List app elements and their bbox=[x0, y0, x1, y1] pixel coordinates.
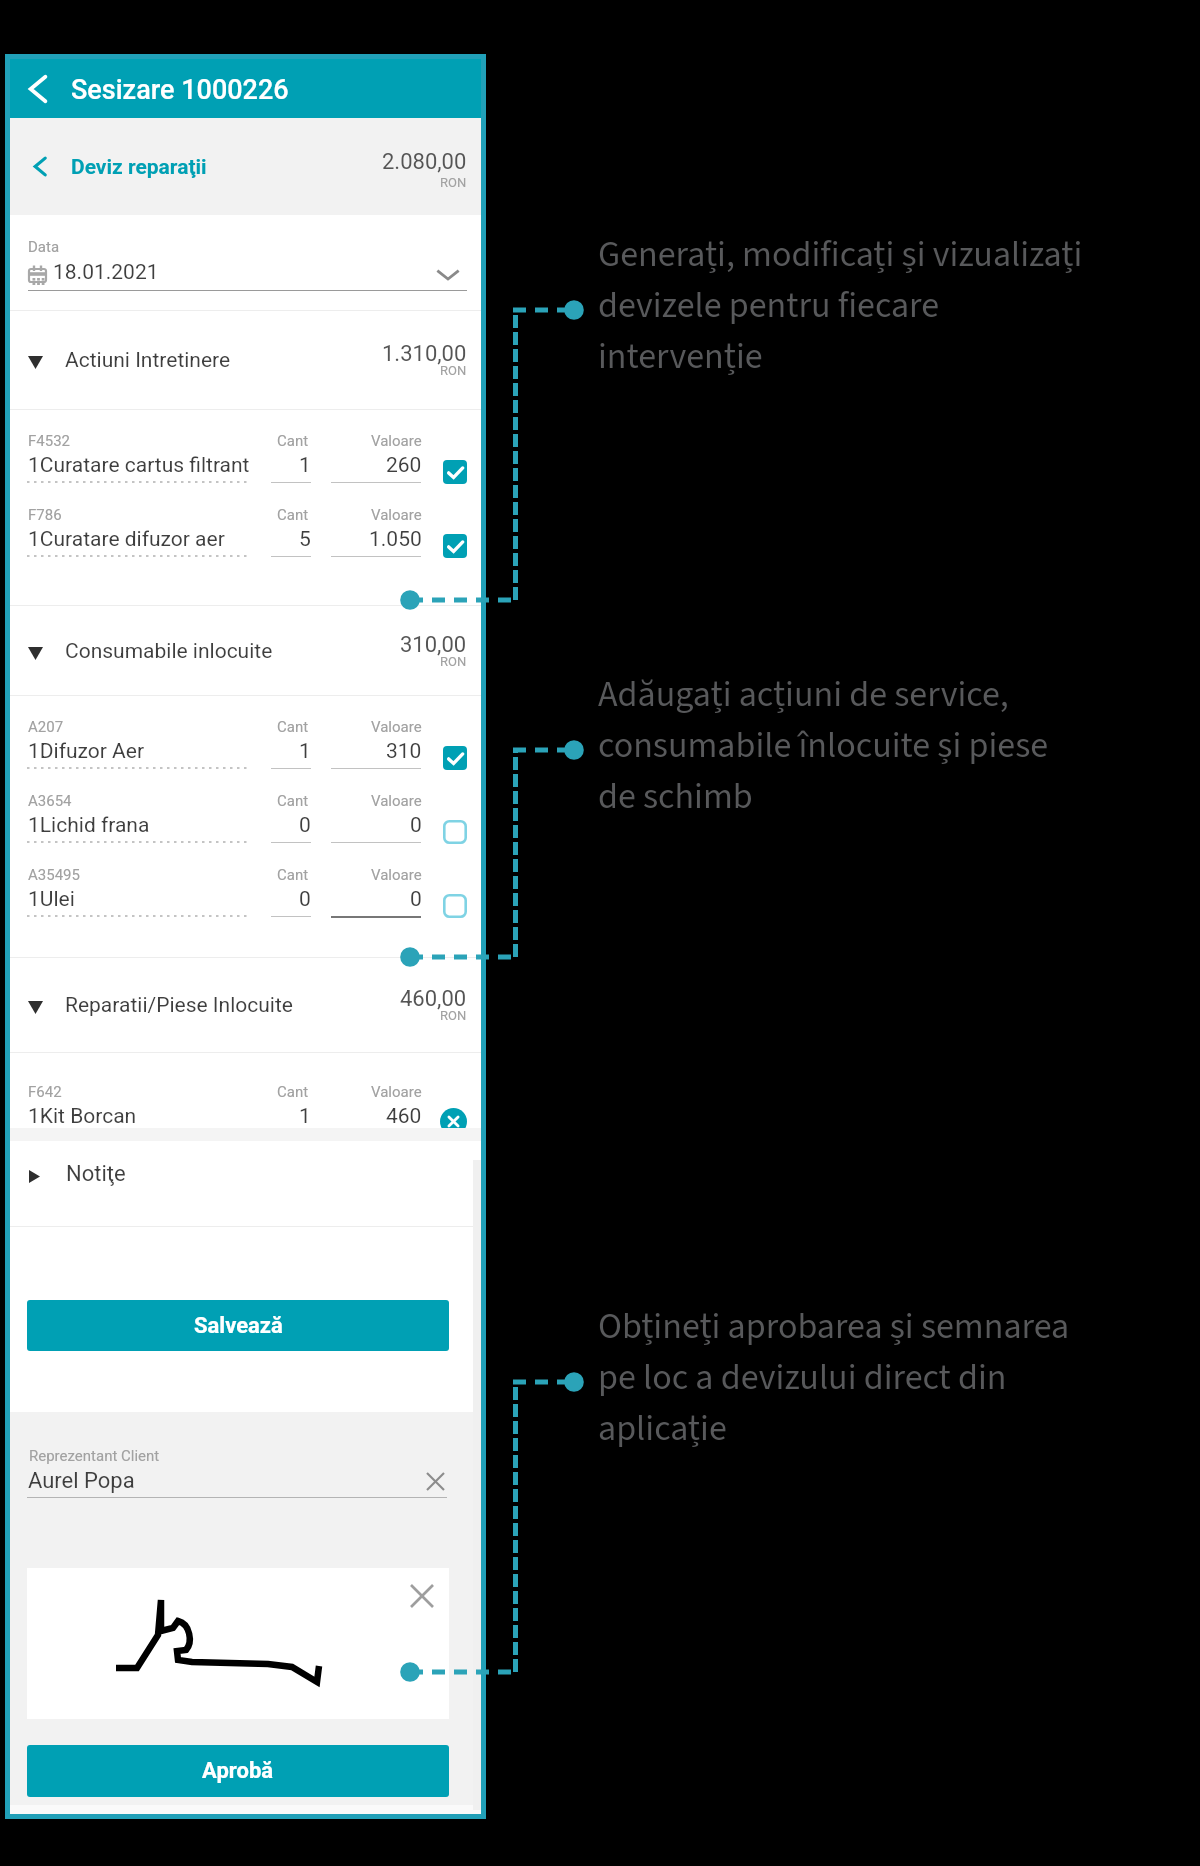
button[interactable]: Toggle item bbox=[443, 534, 467, 558]
staticText: 1Curatare difuzor aer bbox=[28, 527, 225, 552]
staticText: Cant bbox=[277, 506, 309, 524]
staticText: 1Curatare cartus filtrant bbox=[28, 453, 250, 478]
button[interactable]: Consumabile inlocuite bbox=[10, 606, 481, 695]
button[interactable]: Expand date bbox=[434, 260, 462, 288]
staticText: Aurel Popa bbox=[28, 1468, 135, 1494]
staticText: 0 bbox=[410, 887, 422, 912]
staticText: 260 bbox=[386, 453, 422, 478]
button[interactable]: Toggle item bbox=[443, 746, 467, 770]
staticText: 310,00 bbox=[400, 632, 467, 658]
button[interactable]: A3654 bbox=[10, 770, 481, 844]
staticText: Valoare bbox=[371, 792, 422, 810]
button[interactable]: Back bbox=[10, 59, 481, 118]
button[interactable]: Toggle item bbox=[443, 820, 467, 844]
staticText: Deviz reparaţii bbox=[71, 155, 207, 180]
staticText: RON bbox=[440, 175, 467, 190]
button[interactable]: Toggle item bbox=[443, 894, 467, 918]
staticText: RON bbox=[440, 1008, 467, 1023]
staticText: 0 bbox=[299, 887, 311, 912]
staticText: Valoare bbox=[371, 432, 422, 450]
button[interactable]: F786 bbox=[10, 484, 481, 558]
staticText: 460 bbox=[386, 1104, 422, 1129]
button[interactable]: Toggle item bbox=[440, 1108, 467, 1135]
staticText: 2.080,00 bbox=[382, 149, 467, 175]
button[interactable]: Actiuni Intretinere bbox=[10, 311, 481, 409]
staticText: Reprezentant Client bbox=[29, 1447, 160, 1465]
button[interactable]: A207 bbox=[10, 696, 481, 770]
staticText: RON bbox=[440, 363, 467, 378]
staticText: Obțineți aprobarea și semnarea pe loc a … bbox=[598, 1301, 1088, 1454]
staticText: 460,00 bbox=[400, 986, 467, 1012]
staticText: Consumabile inlocuite bbox=[65, 639, 273, 664]
button[interactable]: Clear name bbox=[421, 1467, 449, 1495]
staticText: 1Kit Borcan bbox=[28, 1104, 137, 1129]
staticText: F4532 bbox=[28, 432, 71, 450]
button[interactable]: Toggle item bbox=[443, 460, 467, 484]
staticText: 18.01.2021 bbox=[53, 260, 159, 285]
staticText: 1.050 bbox=[369, 527, 422, 552]
staticText: Cant bbox=[277, 718, 309, 736]
staticText: Valoare bbox=[371, 506, 422, 524]
staticText: 1Difuzor Aer bbox=[28, 739, 145, 764]
staticText: Valoare bbox=[371, 1083, 422, 1101]
staticText: 5 bbox=[299, 527, 311, 552]
button[interactable]: A35495 bbox=[10, 844, 481, 918]
button[interactable]: Clear signature bbox=[404, 1578, 440, 1614]
staticText: 1.310,00 bbox=[382, 341, 467, 367]
staticText: F786 bbox=[28, 506, 62, 524]
staticText: Reparatii/Piese Inlocuite bbox=[65, 993, 293, 1018]
button[interactable]: Aprobă bbox=[27, 1745, 449, 1797]
staticText: 1 bbox=[299, 739, 311, 764]
staticText: 0 bbox=[299, 813, 311, 838]
staticText: RON bbox=[440, 654, 467, 669]
staticText: Cant bbox=[277, 866, 309, 884]
staticText: 0 bbox=[410, 813, 422, 838]
staticText: Valoare bbox=[371, 866, 422, 884]
staticText: Adăugați acțiuni de service, consumabile… bbox=[598, 669, 1068, 822]
button[interactable]: Reparatii/Piese Inlocuite bbox=[10, 958, 481, 1052]
staticText: Salvează bbox=[194, 1313, 283, 1339]
staticText: A207 bbox=[28, 718, 64, 736]
staticText: F642 bbox=[28, 1083, 62, 1101]
staticText: 310 bbox=[386, 739, 422, 764]
staticText: Data bbox=[28, 238, 60, 256]
staticText: A3654 bbox=[28, 792, 72, 810]
staticText: Aprobă bbox=[202, 1758, 274, 1784]
staticText: Valoare bbox=[371, 718, 422, 736]
staticText: 1Lichid frana bbox=[28, 813, 150, 838]
button[interactable]: Notiţe bbox=[10, 1141, 481, 1226]
button[interactable]: Collapse bbox=[17, 118, 61, 215]
staticText: A35495 bbox=[28, 866, 80, 884]
staticText: Cant bbox=[277, 792, 309, 810]
staticText: 1Ulei bbox=[28, 887, 75, 912]
staticText: Actiuni Intretinere bbox=[65, 348, 231, 373]
staticText: Cant bbox=[277, 1083, 309, 1101]
button[interactable]: F642 bbox=[10, 1053, 481, 1141]
button[interactable]: F4532 bbox=[10, 410, 481, 484]
staticText: 1 bbox=[299, 1104, 311, 1129]
staticText: Notiţe bbox=[66, 1161, 126, 1187]
staticText: Sesizare 1000226 bbox=[71, 74, 289, 106]
button[interactable]: Back bbox=[15, 59, 59, 118]
button[interactable]: Collapse bbox=[10, 118, 481, 215]
staticText: Generați, modificați și vizualizați devi… bbox=[598, 229, 1098, 382]
staticText: 1 bbox=[299, 453, 311, 478]
button[interactable]: Salvează bbox=[27, 1300, 449, 1351]
staticText: Cant bbox=[277, 432, 309, 450]
